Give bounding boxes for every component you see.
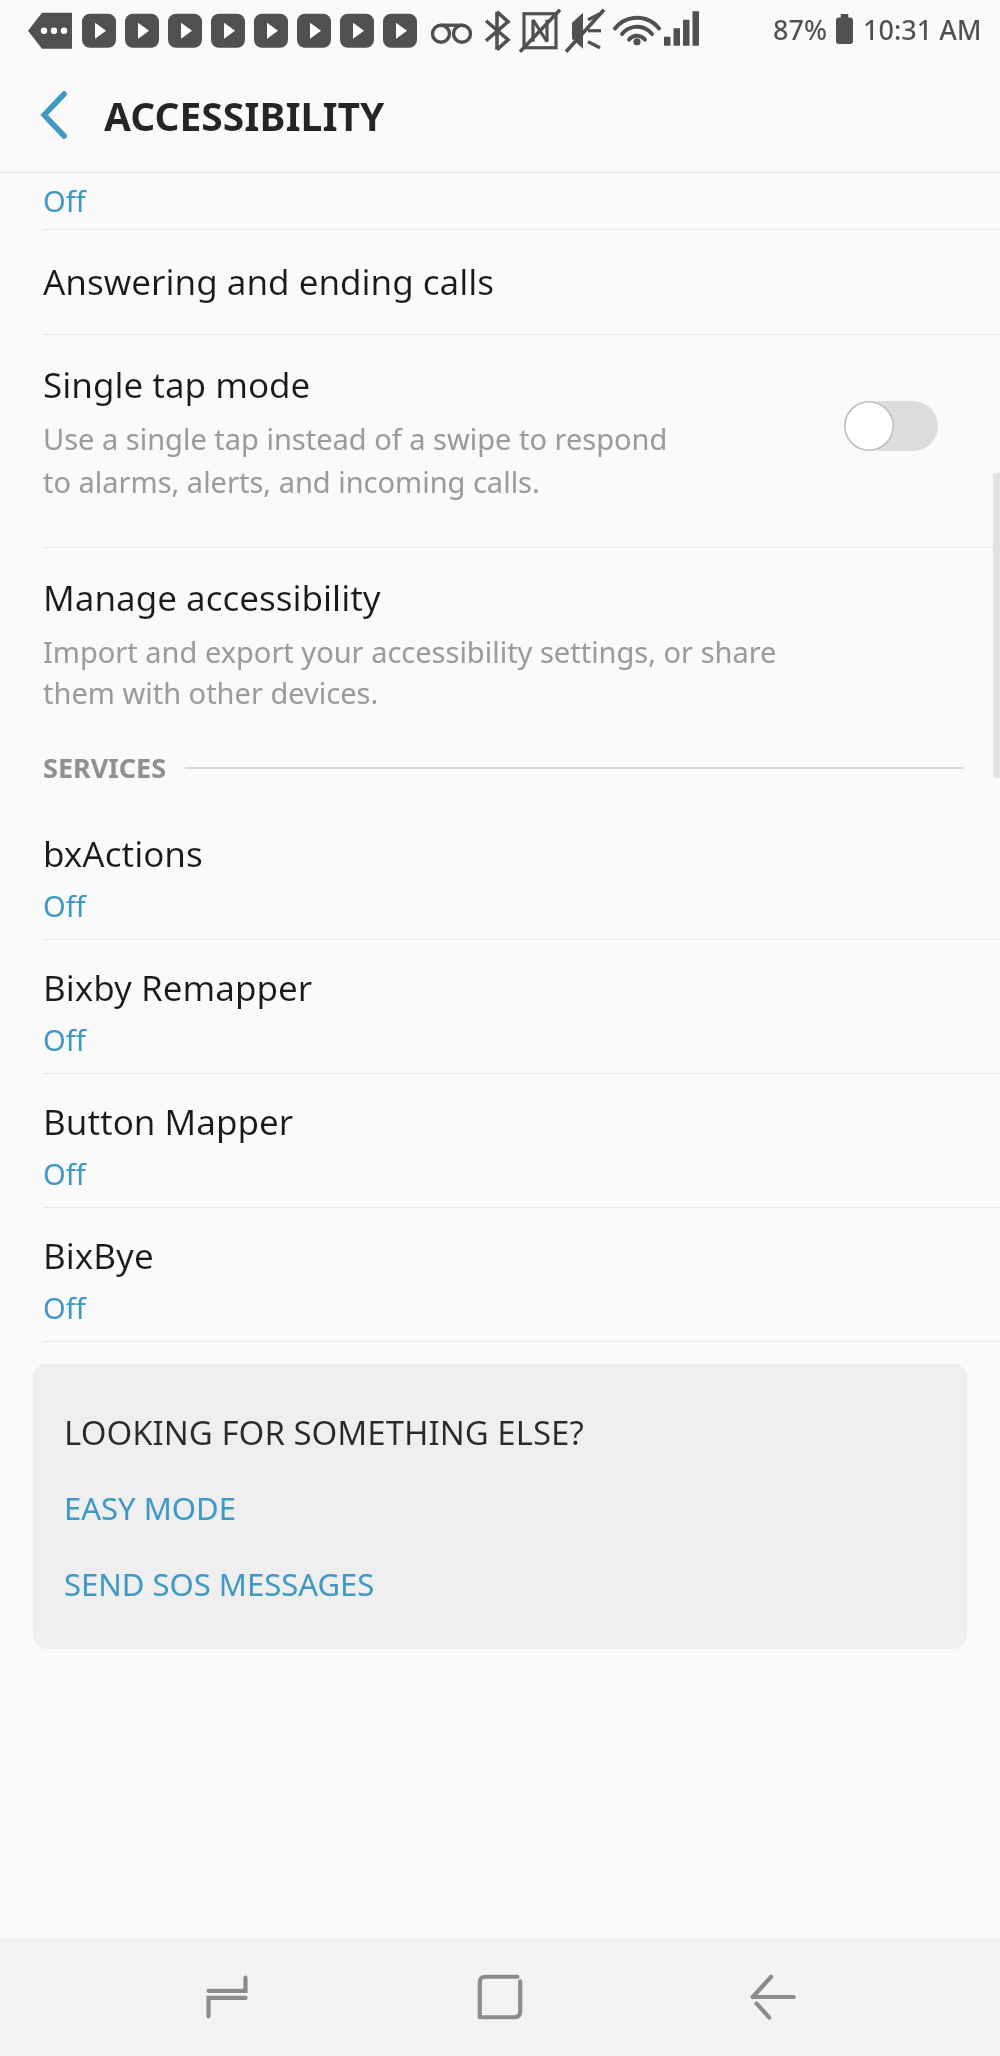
staticText: Use a single tap instead of a swipe to r…	[43, 419, 668, 458]
staticText: Bixby Remapper	[43, 964, 313, 1012]
staticText: 10:31 AM	[863, 11, 982, 48]
button[interactable]: Single tap mode	[0, 335, 1000, 547]
button[interactable]: bxActions	[0, 806, 1000, 939]
button[interactable]: SEND SOS MESSAGES	[64, 1559, 375, 1609]
staticText: BixBye	[43, 1232, 154, 1280]
button[interactable]: Navigate up	[18, 83, 82, 147]
button[interactable]: Home	[454, 1951, 546, 2043]
staticText: 87%	[773, 11, 827, 48]
staticText: Answering and ending calls	[43, 258, 495, 306]
staticText: ACCESSIBILITY	[104, 89, 385, 142]
button[interactable]: Back	[727, 1951, 819, 2043]
button[interactable]: Off	[0, 179, 1000, 229]
staticText: to alarms, alerts, and incoming calls.	[43, 462, 540, 501]
staticText: SEND SOS MESSAGES	[64, 1563, 375, 1605]
button[interactable]: Single tap mode toggle, off	[844, 401, 938, 451]
button[interactable]: BixBye	[0, 1208, 1000, 1341]
button[interactable]: Recent apps	[181, 1951, 273, 2043]
button[interactable]: Answering and ending calls	[0, 230, 1000, 334]
staticText: Off	[43, 1288, 86, 1327]
button[interactable]: EASY MODE	[64, 1483, 236, 1533]
staticText: Button Mapper	[43, 1098, 294, 1146]
staticText: bxActions	[43, 830, 203, 878]
staticText: Single tap mode	[43, 361, 311, 409]
staticText: EASY MODE	[64, 1487, 236, 1529]
staticText: LOOKING FOR SOMETHING ELSE?	[64, 1410, 584, 1455]
button[interactable]: Bixby Remapper	[0, 940, 1000, 1073]
button[interactable]: Button Mapper	[0, 1074, 1000, 1207]
staticText: Manage accessibility	[43, 574, 381, 622]
staticText: Off	[43, 181, 86, 220]
staticText: Off	[43, 1154, 86, 1193]
staticText: Import and export your accessibility set…	[43, 632, 777, 713]
staticText: Off	[43, 886, 86, 925]
staticText: Off	[43, 1020, 86, 1059]
staticText: SERVICES	[43, 749, 167, 786]
button[interactable]: Manage accessibility	[0, 548, 1000, 728]
